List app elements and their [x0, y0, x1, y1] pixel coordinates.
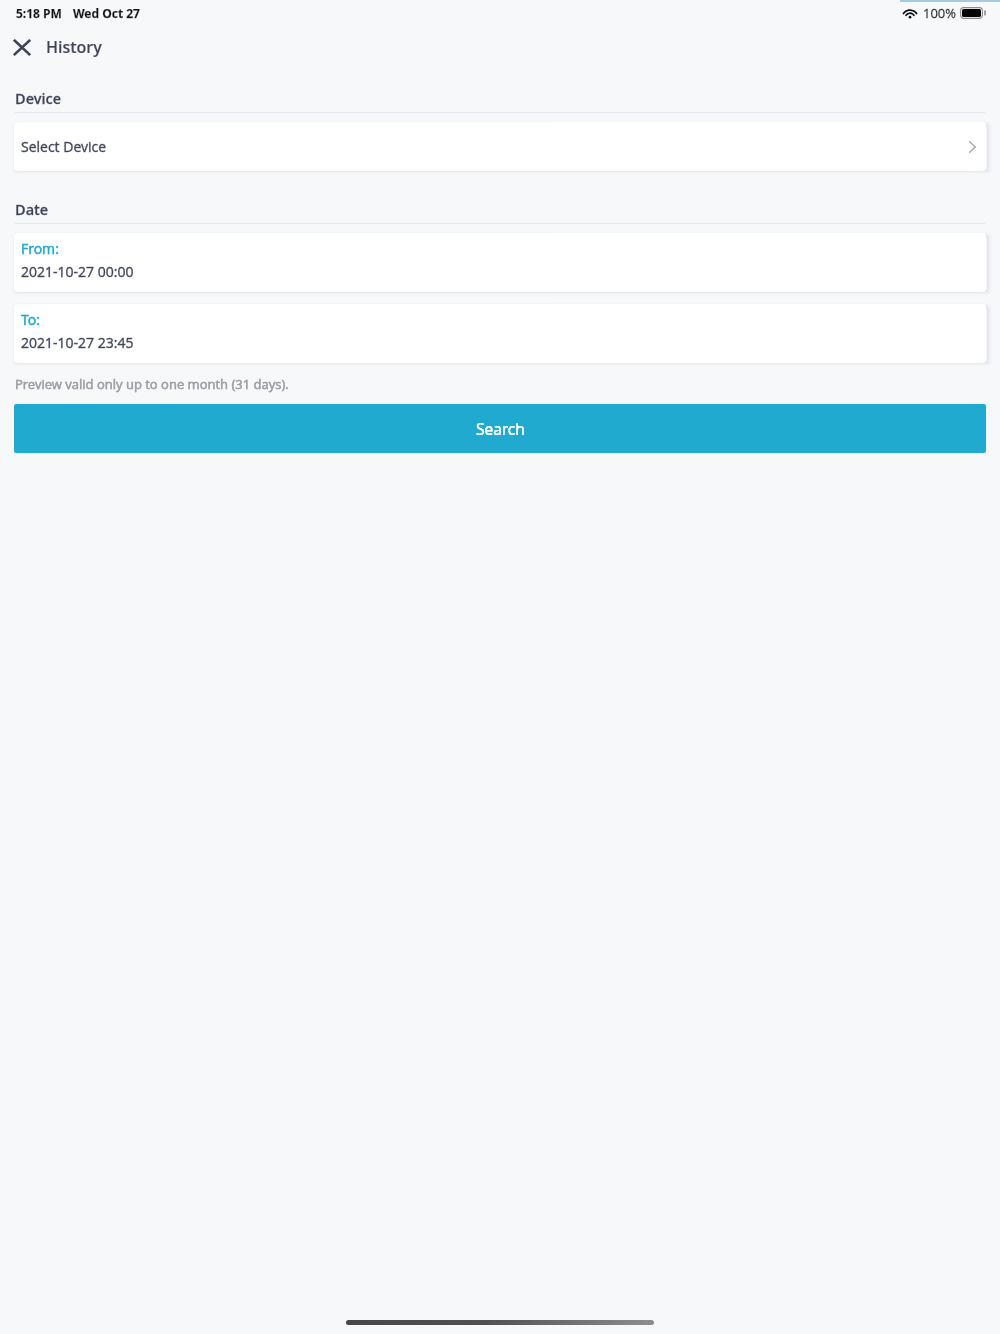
staticText: To:: [21, 310, 40, 329]
staticText: Preview valid only up to one month (31 d…: [15, 375, 289, 393]
button[interactable]: Select Device: [14, 122, 986, 171]
button[interactable]: To:: [14, 304, 986, 363]
staticText: From:: [21, 239, 59, 258]
button[interactable]: Search: [14, 404, 986, 453]
staticText: 5:18 PM: [16, 5, 62, 21]
staticText: 2021-10-27 23:45: [21, 333, 134, 352]
staticText: 100%: [923, 4, 957, 22]
staticText: 2021-10-27 00:00: [21, 262, 134, 281]
staticText: Search: [476, 418, 525, 439]
staticText: Date: [15, 200, 49, 220]
staticText: Select Device: [21, 137, 107, 156]
button[interactable]: Close: [6, 31, 38, 63]
staticText: Device: [15, 89, 62, 109]
staticText: Wed Oct 27: [73, 5, 140, 21]
button[interactable]: From:: [14, 233, 986, 292]
staticText: History: [46, 36, 102, 58]
